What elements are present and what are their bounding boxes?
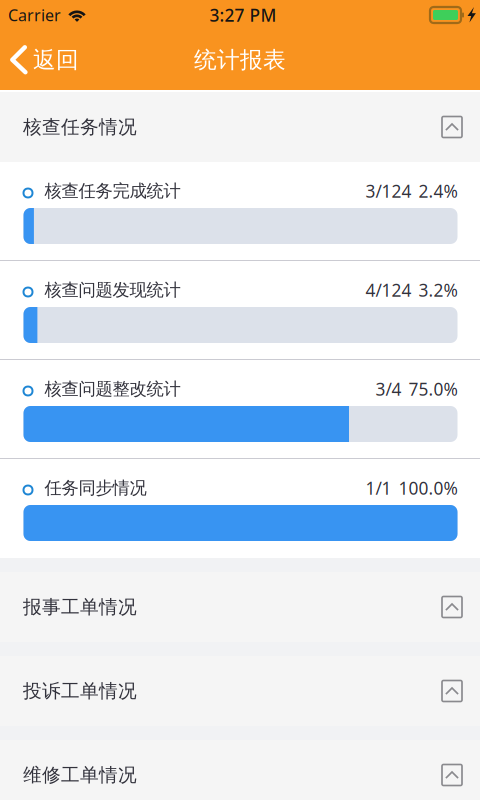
staticText: 2.4% [418, 179, 457, 202]
staticText: 3/124 [365, 179, 411, 202]
staticText: 3.2% [418, 278, 457, 301]
button[interactable]: 核查问题整改统计 [0, 360, 480, 458]
staticText: 核查任务情况 [23, 115, 137, 138]
staticText: 100.0% [398, 476, 457, 499]
staticText: 任务同步情况 [44, 477, 146, 499]
staticText: 75.0% [408, 377, 457, 400]
button[interactable]: 核查任务完成统计 [0, 162, 480, 260]
staticText: 3/4 [375, 377, 401, 400]
staticText: 4/124 [365, 278, 411, 301]
button[interactable]: 核查任务情况 [0, 92, 480, 162]
button[interactable]: 投诉工单情况 [0, 656, 480, 726]
button[interactable]: 核查问题发现统计 [0, 261, 480, 359]
staticText: Carrier [8, 4, 61, 26]
button[interactable]: 返回 [0, 30, 93, 90]
staticText: 核查任务完成统计 [44, 180, 180, 202]
staticText: 核查问题发现统计 [44, 279, 180, 301]
staticText: 投诉工单情况 [23, 679, 137, 702]
staticText: 统计报表 [194, 46, 286, 74]
button[interactable]: 报事工单情况 [0, 572, 480, 642]
staticText: 报事工单情况 [23, 595, 137, 618]
button[interactable]: 维修工单情况 [0, 740, 480, 800]
button[interactable]: 任务同步情况 [0, 459, 480, 557]
staticText: 核查问题整改统计 [44, 378, 180, 400]
staticText: 3:27 PM [209, 3, 276, 26]
staticText: 返回 [33, 46, 79, 74]
staticText: 维修工单情况 [23, 763, 137, 786]
staticText: 1/1 [365, 476, 391, 499]
